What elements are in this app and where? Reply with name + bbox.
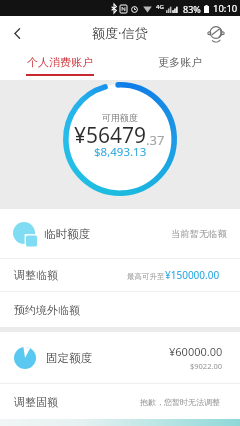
staticText: 最高可升至 — [127, 272, 165, 281]
button[interactable]: 调整临额 — [0, 259, 240, 291]
staticText: 调整固额 — [14, 395, 58, 409]
staticText: ¥56479 — [74, 121, 147, 150]
staticText: 抱歉，您暂时无法调整 — [140, 397, 220, 407]
button[interactable]: 固定额度 — [0, 332, 240, 383]
button[interactable]: 预约境外临额 — [0, 292, 240, 327]
button[interactable]: 个人消费账户 — [0, 50, 120, 80]
staticText: 调整临额 — [14, 268, 58, 282]
button[interactable]: 临时额度 — [0, 209, 240, 258]
staticText: ¥150000.00 — [165, 268, 220, 282]
staticText: 当前暂无临额 — [171, 228, 227, 240]
button[interactable]: Customer service — [199, 16, 233, 50]
staticText: 固定额度 — [46, 351, 92, 365]
staticText: 更多账户 — [158, 55, 202, 69]
button[interactable]: 调整固额 — [0, 384, 240, 420]
staticText: 83% — [183, 3, 201, 15]
button[interactable]: Back — [0, 16, 34, 50]
staticText: 预约境外临额 — [14, 303, 80, 317]
staticText: .37 — [146, 131, 165, 149]
staticText: $9022.00 — [190, 361, 223, 371]
staticText: 4G — [156, 3, 164, 11]
staticText: 额度·信贷 — [92, 24, 148, 42]
staticText: 可用额度 — [102, 112, 138, 123]
staticText: ¥60000.00 — [169, 344, 223, 359]
button[interactable]: 更多账户 — [120, 50, 240, 80]
staticText: 10:10 — [213, 2, 238, 15]
staticText: $8,493.13 — [94, 144, 147, 160]
staticText: 临时额度 — [44, 227, 90, 241]
staticText: 个人消费账户 — [27, 55, 93, 69]
